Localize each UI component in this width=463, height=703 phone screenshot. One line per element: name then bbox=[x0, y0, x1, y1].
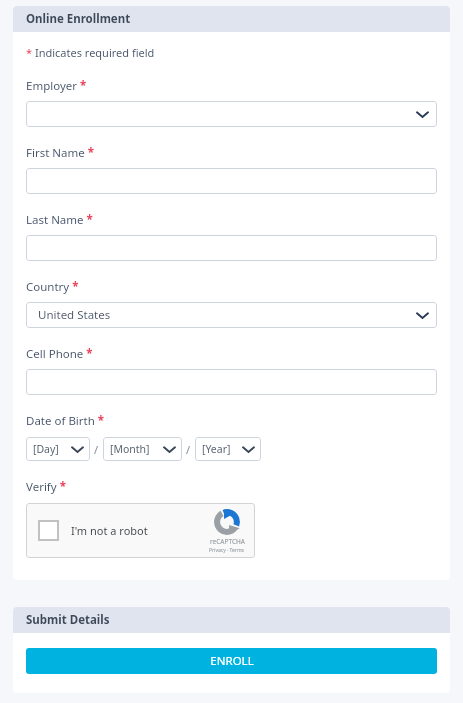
button[interactable]: [Day] bbox=[26, 437, 90, 461]
button[interactable]: [Year] bbox=[195, 437, 261, 461]
button[interactable] bbox=[26, 235, 437, 261]
button[interactable]: [Month] bbox=[103, 437, 182, 461]
staticText: [Day] bbox=[33, 442, 59, 456]
button[interactable]: I'm not a robot bbox=[26, 503, 255, 558]
staticText: [Year] bbox=[202, 442, 231, 456]
staticText: Submit Details bbox=[26, 612, 110, 628]
staticText: United States bbox=[38, 307, 111, 323]
staticText: ENROLL bbox=[210, 653, 254, 669]
button[interactable] bbox=[26, 168, 437, 194]
staticText: Country * bbox=[26, 279, 79, 295]
button[interactable]: ENROLL bbox=[26, 648, 437, 674]
staticText: Last Name * bbox=[26, 212, 93, 228]
button[interactable] bbox=[26, 369, 437, 395]
staticText: Verify * bbox=[26, 479, 66, 495]
staticText: Online Enrollment bbox=[26, 11, 131, 27]
button[interactable] bbox=[26, 101, 437, 127]
staticText: Privacy · Terms bbox=[209, 547, 245, 554]
staticText: Date of Birth * bbox=[26, 413, 105, 429]
staticText: * Indicates required field bbox=[26, 45, 155, 60]
staticText: I'm not a robot bbox=[71, 523, 148, 538]
staticText: Cell Phone * bbox=[26, 346, 93, 362]
staticText: / bbox=[186, 442, 191, 457]
staticText: reCAPTCHA bbox=[210, 537, 245, 546]
staticText: / bbox=[94, 442, 99, 457]
staticText: [Month] bbox=[110, 442, 150, 456]
button[interactable]: United States bbox=[26, 302, 437, 328]
staticText: First Name * bbox=[26, 145, 94, 161]
staticText: Employer * bbox=[26, 78, 87, 94]
